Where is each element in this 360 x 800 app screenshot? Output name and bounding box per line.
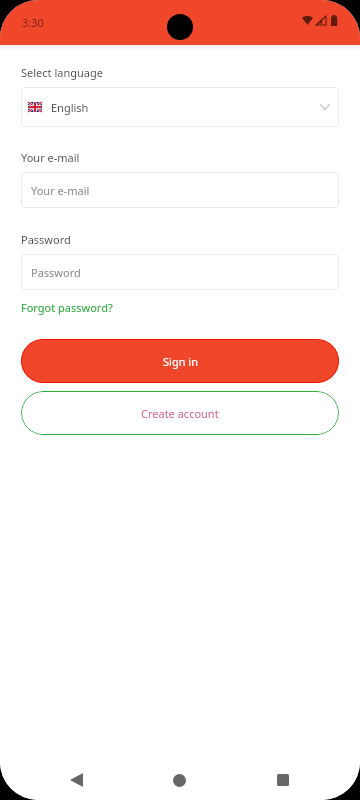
staticText: Select language	[21, 65, 103, 80]
staticText: Forgot password?	[21, 300, 113, 315]
button[interactable]: Sign in	[21, 339, 339, 383]
button[interactable]: English	[21, 87, 339, 127]
button[interactable]: Forgot password?	[21, 300, 113, 315]
button[interactable]: Your e-mail	[21, 172, 339, 208]
button[interactable]: Back	[54, 758, 98, 800]
button[interactable]: Home	[157, 758, 201, 800]
button[interactable]: Create account	[21, 391, 339, 435]
other: Expand	[320, 104, 330, 110]
staticText: English	[51, 100, 89, 115]
staticText: Password	[31, 265, 81, 280]
button[interactable]: Password	[21, 254, 339, 290]
button[interactable]: Recents	[261, 758, 305, 800]
staticText: Password	[21, 232, 71, 247]
staticText: Create account	[141, 406, 219, 421]
staticText: Sign in	[163, 354, 198, 369]
staticText: Your e-mail	[31, 183, 90, 198]
staticText: 3:30	[22, 15, 44, 30]
staticText: Your e-mail	[21, 150, 80, 165]
